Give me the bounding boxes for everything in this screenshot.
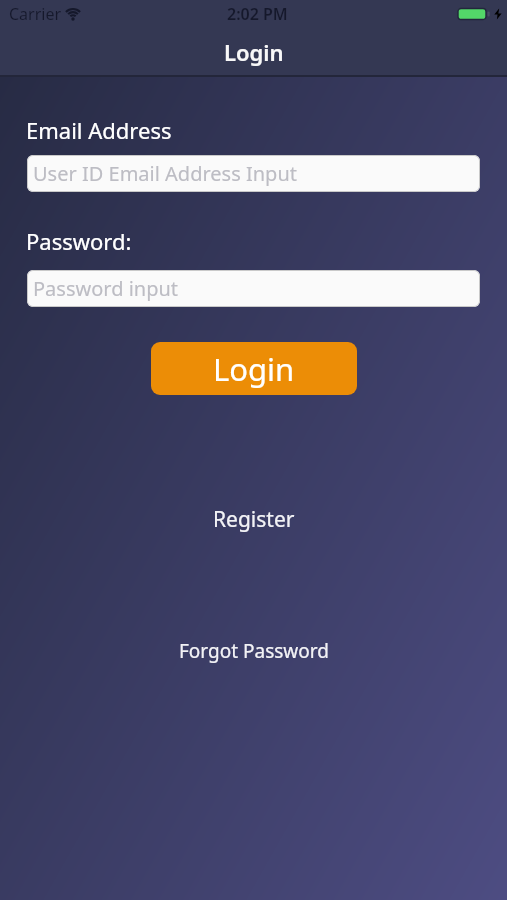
staticText: Forgot Password [179,638,329,664]
button[interactable]: Login [151,342,357,395]
button[interactable]: Forgot Password [179,638,329,664]
staticText: Register [213,505,295,534]
staticText: Login [213,348,295,390]
staticText: Email Address [26,115,172,145]
staticText: User ID Email Address Input [33,160,297,187]
staticText: Carrier [9,3,62,25]
button[interactable]: Register [213,505,295,534]
staticText: Password: [26,226,132,256]
staticText: 2:02 PM [227,3,288,25]
button[interactable]: User ID Email Address Input [27,155,480,192]
staticText: Login [224,37,284,67]
button[interactable]: Password input [27,270,480,307]
staticText: Password input [33,275,179,302]
